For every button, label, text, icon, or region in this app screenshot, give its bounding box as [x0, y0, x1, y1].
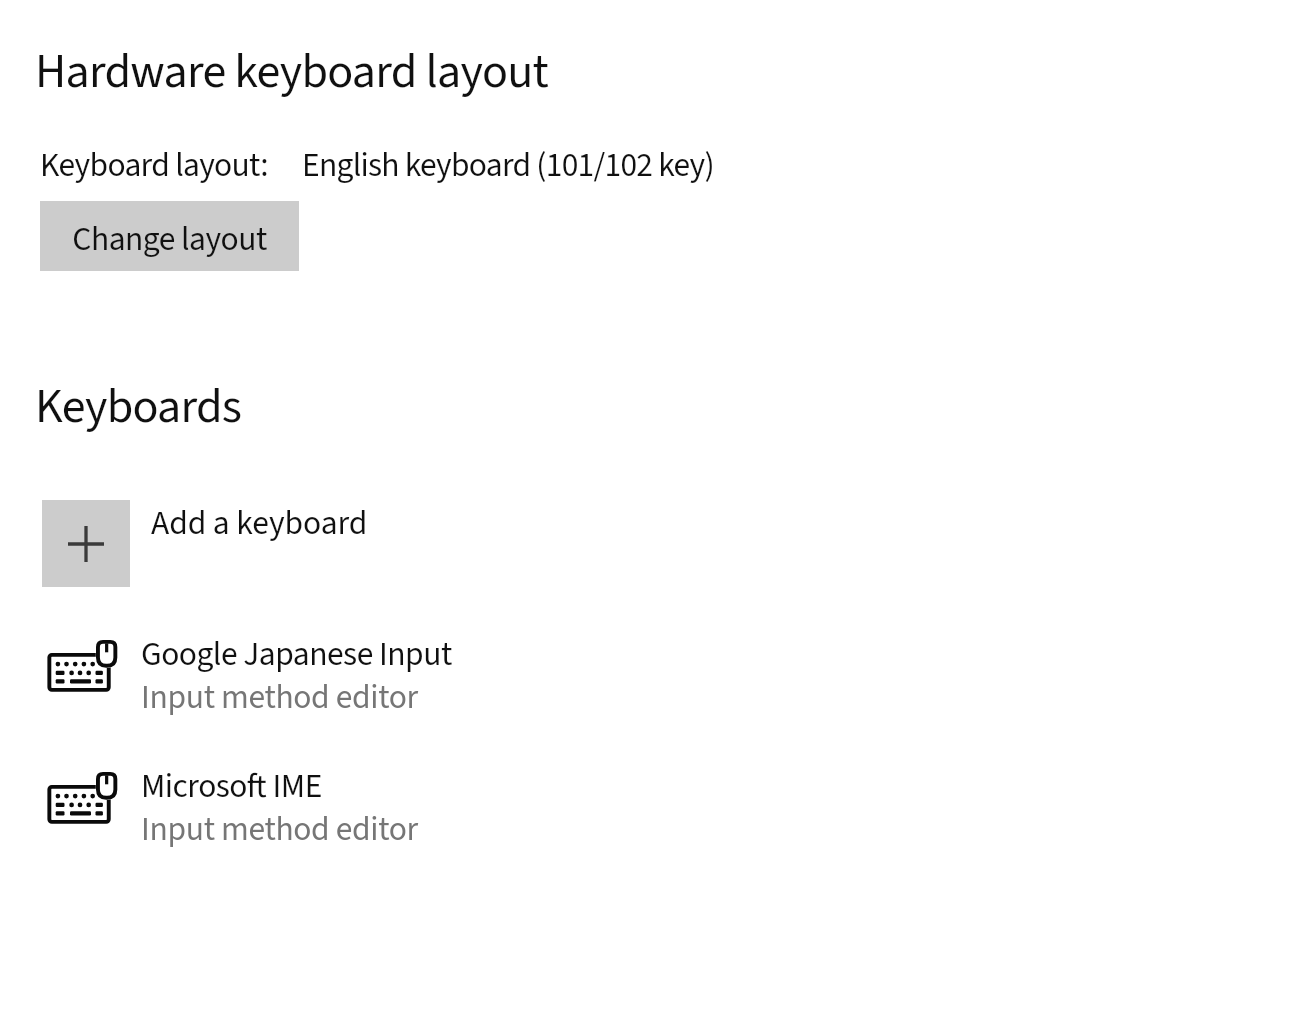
staticText: English keyboard (101/102 key) [302, 142, 714, 190]
staticText: Input method editor [141, 674, 418, 722]
button[interactable]: Add a keyboard [42, 500, 368, 587]
staticText: Change layout [72, 216, 267, 264]
staticText: Keyboard layout: [40, 142, 268, 190]
button[interactable]: Keyboard [44, 636, 452, 732]
staticText: Microsoft IME [141, 763, 322, 811]
other: Add a keyboard [42, 500, 130, 587]
other: Keyboard [44, 636, 120, 696]
other: Keyboard [44, 768, 120, 828]
staticText: Hardware keyboard layout [35, 38, 549, 106]
button[interactable]: Keyboard [44, 768, 418, 864]
staticText: Add a keyboard [151, 500, 368, 548]
staticText: Keyboards [35, 373, 242, 441]
staticText: Google Japanese Input [141, 631, 452, 679]
button[interactable]: Change layout [40, 201, 299, 271]
staticText: Input method editor [141, 806, 418, 854]
